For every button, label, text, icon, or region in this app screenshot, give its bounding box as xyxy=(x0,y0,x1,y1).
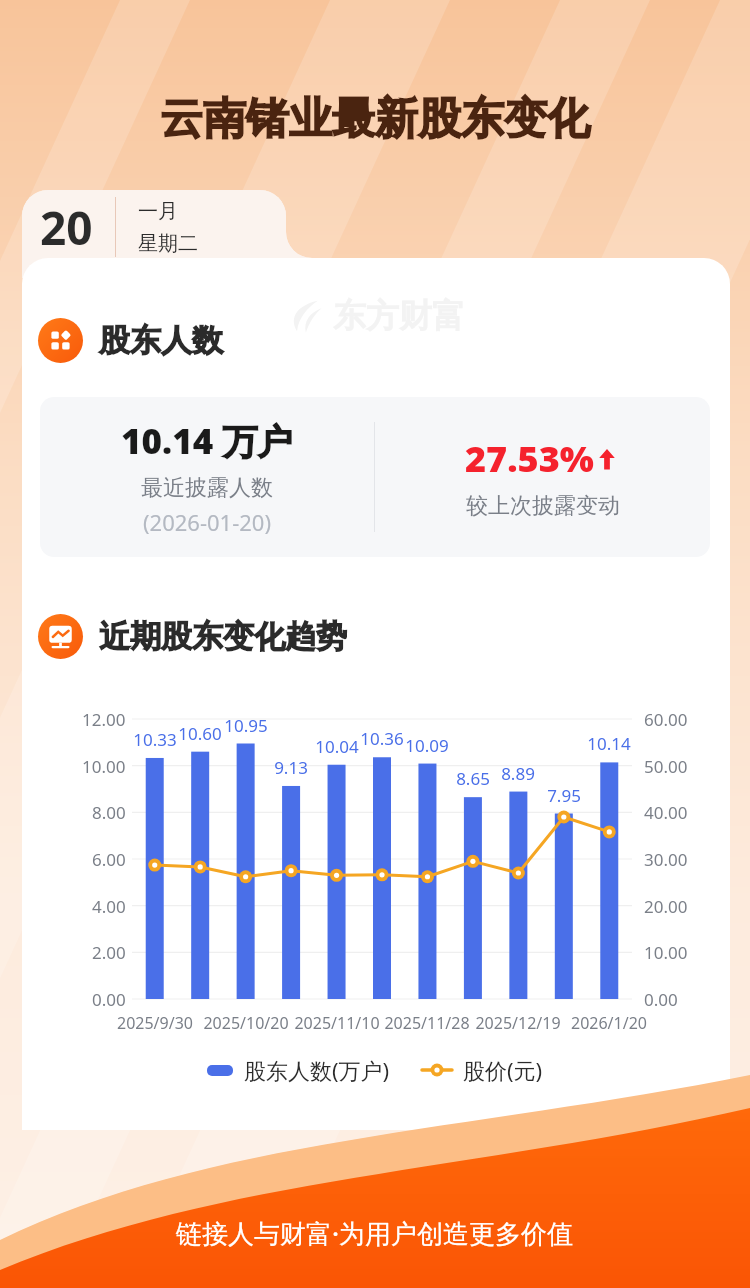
staticText: 最近披露人数 xyxy=(141,474,273,502)
staticText: 12.00 xyxy=(82,708,126,731)
staticText: 10.36 xyxy=(360,727,404,750)
staticText: 7.95 xyxy=(547,784,581,807)
staticText: 近期股东变化趋势 xyxy=(99,617,347,656)
staticText: 股价(元) xyxy=(463,1055,543,1085)
staticText: 10.14 万户 xyxy=(121,417,293,465)
staticText: 20.00 xyxy=(644,895,688,918)
staticText: 0.00 xyxy=(92,988,126,1011)
staticText: 9.13 xyxy=(274,756,308,779)
staticText: 2.00 xyxy=(92,941,126,964)
staticText: 0.00 xyxy=(644,988,678,1011)
staticText: 2025/12/19 xyxy=(475,1012,561,1034)
staticText: 8.65 xyxy=(456,767,490,790)
staticText: 股东人数 xyxy=(99,321,223,360)
button[interactable]: 股价(元) xyxy=(422,1055,543,1085)
staticText: 8.89 xyxy=(501,762,535,785)
button[interactable]: 近期股东变化趋势 xyxy=(38,614,347,659)
staticText: 10.04 xyxy=(315,735,359,758)
staticText: 6.00 xyxy=(92,848,126,871)
staticText: 10.60 xyxy=(178,722,222,745)
staticText: 10.14 xyxy=(587,732,631,755)
staticText: 10.00 xyxy=(644,941,688,964)
staticText: 10.95 xyxy=(224,714,268,737)
staticText: 2025/10/20 xyxy=(203,1012,289,1034)
staticText: 一月 xyxy=(138,199,178,224)
staticText: 东方财富 xyxy=(333,295,465,337)
staticText: 2026/1/20 xyxy=(571,1012,647,1034)
staticText: 股东人数(万户) xyxy=(244,1055,390,1085)
staticText: 链接人与财富·为用户创造更多价值 xyxy=(176,1215,574,1251)
button[interactable]: 10.14 万户 xyxy=(40,397,710,557)
button[interactable]: 股东人数 xyxy=(38,318,223,363)
staticText: 10.09 xyxy=(405,734,449,757)
other: 股东人数 xyxy=(38,318,83,363)
staticText: 2025/9/30 xyxy=(117,1012,193,1034)
staticText: 50.00 xyxy=(644,755,688,778)
staticText: 60.00 xyxy=(644,708,688,731)
staticText: 较上次披露变动 xyxy=(466,492,620,520)
staticText: 27.53% xyxy=(465,434,594,483)
staticText: 2025/11/28 xyxy=(384,1012,470,1034)
staticText: 20 xyxy=(40,196,93,258)
staticText: 星期二 xyxy=(138,231,198,256)
staticText: 2025/11/10 xyxy=(294,1012,380,1034)
staticText: 30.00 xyxy=(644,848,688,871)
staticText: 40.00 xyxy=(644,801,688,824)
staticText: 10.00 xyxy=(82,755,126,778)
staticText: 10.33 xyxy=(133,728,177,751)
staticText: 4.00 xyxy=(92,895,126,918)
staticText: (2026-01-20) xyxy=(143,507,272,537)
staticText: 8.00 xyxy=(92,801,126,824)
staticText: 云南锗业最新股东变化 xyxy=(160,92,590,146)
other: 近期股东变化趋势 xyxy=(38,614,83,659)
button[interactable]: 股东人数(万户) xyxy=(207,1055,390,1085)
